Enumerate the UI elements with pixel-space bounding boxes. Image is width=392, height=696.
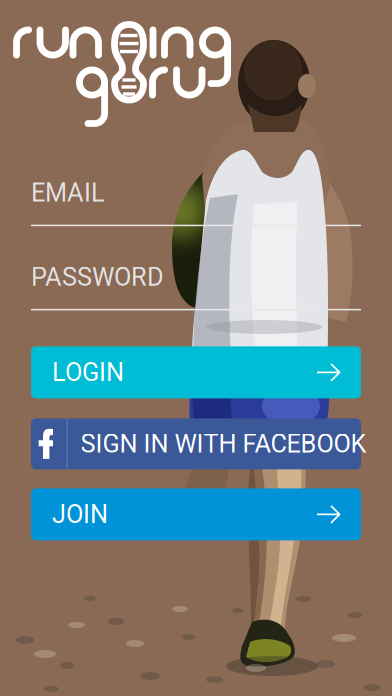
button[interactable]: JOIN	[31, 488, 361, 540]
staticText: PASSWORD	[31, 262, 164, 292]
button[interactable]: SIGN IN WITH FACEBOOK	[31, 418, 361, 469]
staticText: EMAIL	[31, 178, 105, 208]
button[interactable]: LOGIN	[31, 346, 361, 398]
staticText: JOIN	[52, 499, 108, 529]
staticText: LOGIN	[52, 357, 124, 387]
staticText: SIGN IN WITH FACEBOOK	[80, 429, 366, 459]
